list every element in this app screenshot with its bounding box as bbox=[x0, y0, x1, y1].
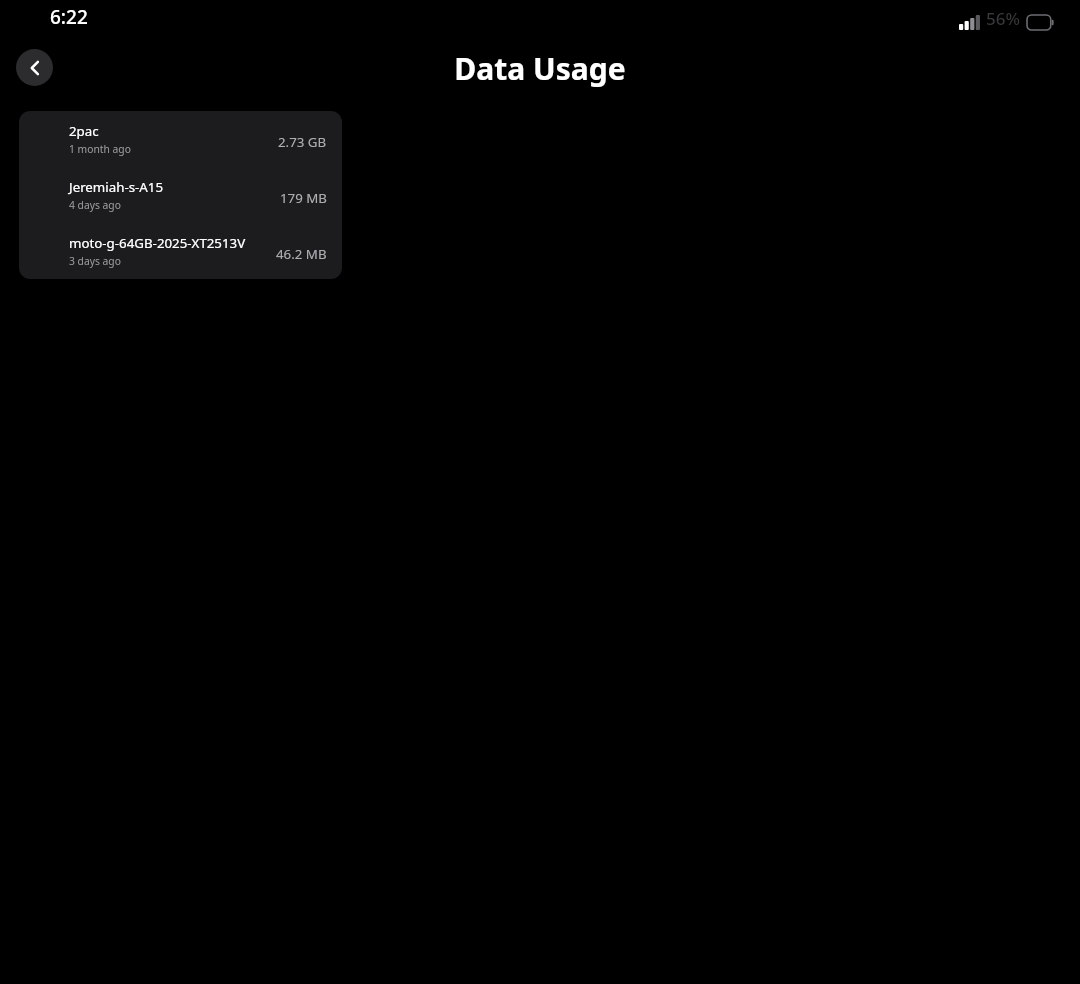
staticText: 179 MB bbox=[280, 189, 327, 207]
button[interactable]: Jeremiah-s-A15 bbox=[19, 167, 342, 223]
staticText: 2pac bbox=[69, 122, 99, 140]
staticText: 2.73 GB bbox=[278, 133, 327, 151]
staticText: 56% bbox=[986, 7, 1020, 30]
staticText: 3 days ago bbox=[69, 254, 121, 268]
staticText: Jeremiah-s-A15 bbox=[69, 178, 164, 196]
staticText: 6:22 bbox=[50, 4, 88, 30]
staticText: Data Usage bbox=[0, 48, 1080, 89]
button[interactable]: 2pac bbox=[19, 111, 342, 167]
staticText: moto-g-64GB-2025-XT2513V bbox=[69, 234, 246, 252]
staticText: 1 month ago bbox=[69, 142, 131, 156]
button[interactable]: Back bbox=[16, 49, 53, 86]
button[interactable]: moto-g-64GB-2025-XT2513V bbox=[19, 223, 342, 279]
staticText: 46.2 MB bbox=[276, 245, 327, 263]
staticText: 4 days ago bbox=[69, 198, 121, 212]
